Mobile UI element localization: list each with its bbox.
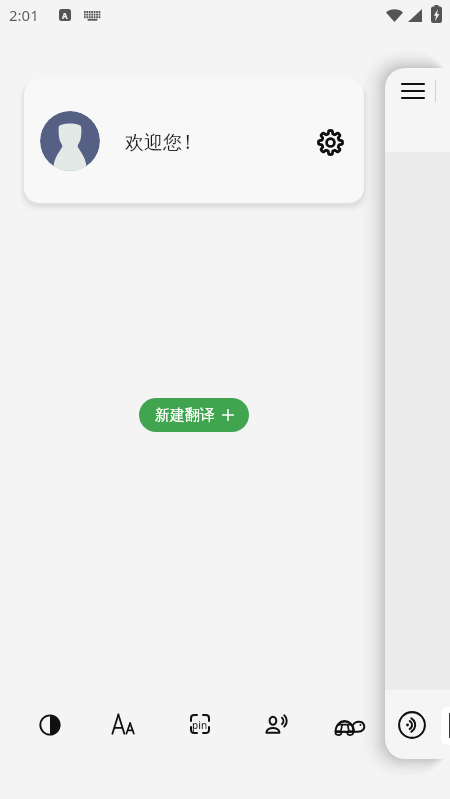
button[interactable]: Pinyin scan	[178, 702, 222, 746]
staticText: 欢迎您 !	[125, 129, 191, 155]
button[interactable]: Contrast	[28, 703, 72, 747]
button[interactable]: 欢迎您 !	[24, 79, 364, 203]
button[interactable]: Menu	[402, 83, 424, 99]
button[interactable]: 新建翻译	[139, 398, 249, 432]
staticText: A	[62, 10, 68, 21]
button[interactable]: Read aloud	[254, 702, 298, 746]
button[interactable]: Font size	[102, 702, 146, 746]
button[interactable]: Settings	[310, 122, 350, 162]
button[interactable]: Slow speed	[328, 703, 372, 747]
button[interactable]: Sound	[396, 709, 428, 741]
staticText: 2:01	[9, 5, 39, 25]
staticText: pin	[192, 718, 208, 732]
staticText: 新建翻译	[155, 406, 215, 425]
